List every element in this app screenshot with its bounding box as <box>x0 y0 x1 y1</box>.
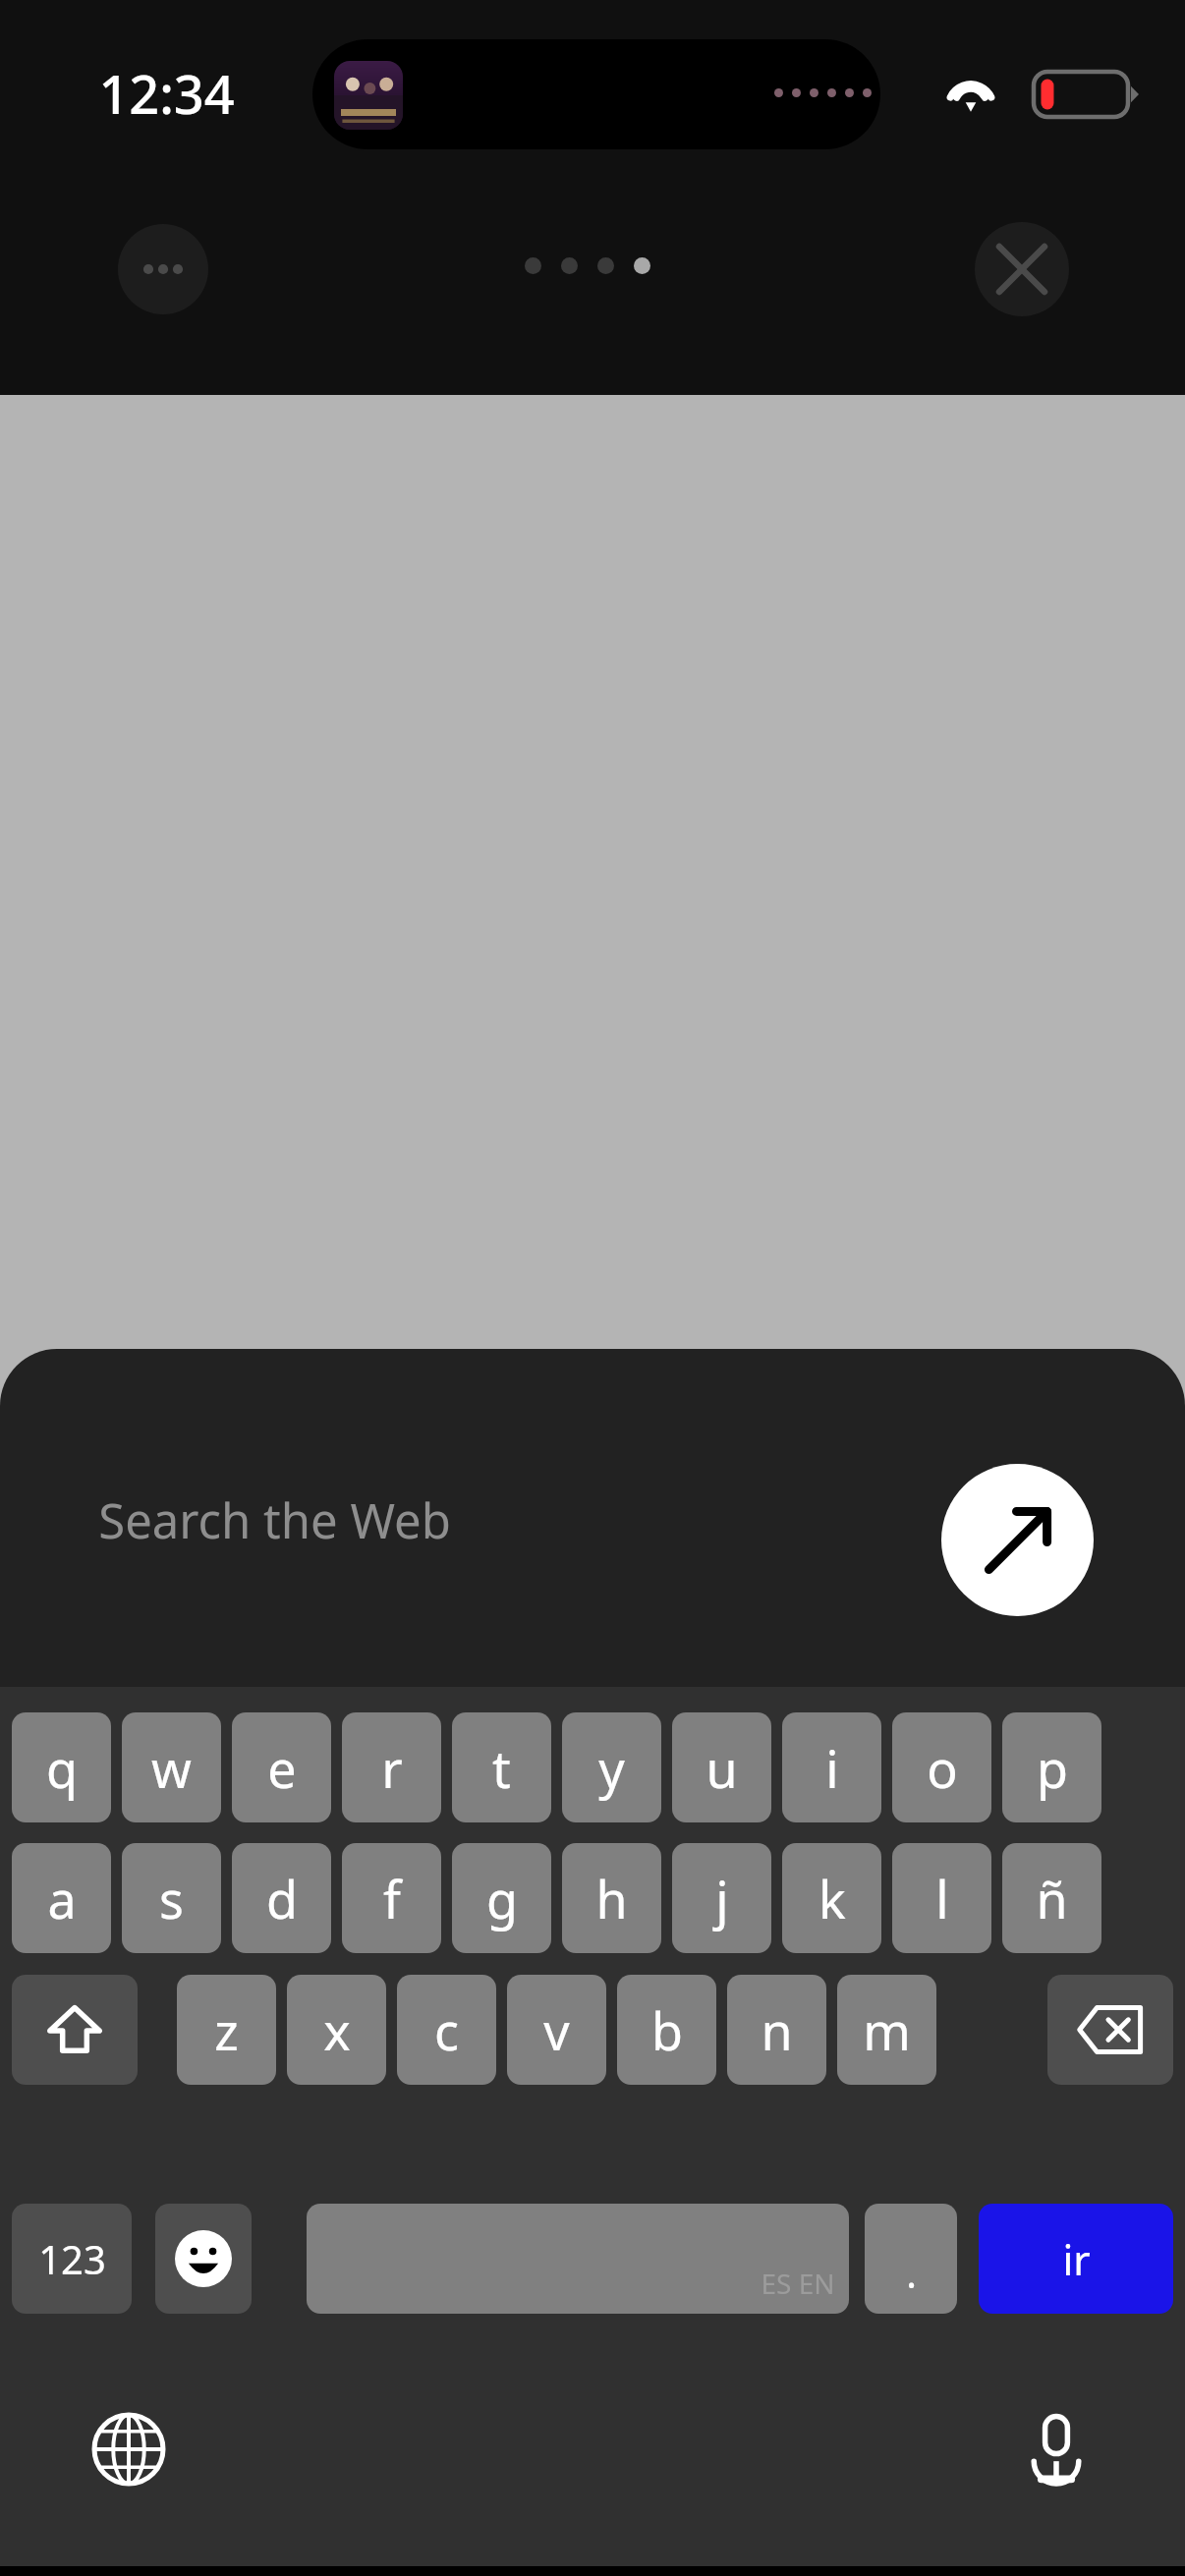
button[interactable]: Space <box>307 2204 849 2314</box>
button[interactable]: ñ <box>1002 1843 1101 1953</box>
button[interactable]: u <box>672 1712 771 1822</box>
button[interactable]: Period <box>865 2204 957 2314</box>
button[interactable]: i <box>782 1712 881 1822</box>
button[interactable]: g <box>452 1843 551 1953</box>
staticText: g <box>486 1864 518 1933</box>
button[interactable]: Go <box>979 2204 1173 2314</box>
staticText: 12:34 <box>98 57 235 130</box>
button[interactable]: Close <box>975 222 1069 316</box>
staticText: . <box>906 2246 917 2299</box>
button[interactable]: x <box>287 1975 386 2085</box>
button[interactable]: o <box>892 1712 991 1822</box>
button[interactable]: j <box>672 1843 771 1953</box>
button[interactable]: k <box>782 1843 881 1953</box>
staticText: y <box>598 1733 625 1803</box>
button[interactable]: l <box>892 1843 991 1953</box>
button[interactable]: f <box>342 1843 441 1953</box>
staticText: l <box>935 1864 949 1933</box>
staticText: k <box>818 1864 846 1933</box>
staticText: r <box>381 1733 403 1803</box>
staticText: f <box>383 1864 401 1933</box>
staticText: x <box>323 1995 351 2065</box>
button[interactable]: c <box>397 1975 496 2085</box>
staticText: b <box>651 1995 683 2065</box>
button[interactable]: e <box>232 1712 331 1822</box>
staticText: Search the Web <box>98 1487 451 1553</box>
staticText: t <box>492 1733 511 1803</box>
staticText: h <box>595 1864 628 1933</box>
staticText: v <box>543 1995 570 2065</box>
button[interactable]: a <box>12 1843 111 1953</box>
button[interactable]: Emoji <box>155 2204 252 2314</box>
staticText: ES EN <box>761 2265 835 2302</box>
button[interactable]: p <box>1002 1712 1101 1822</box>
button[interactable]: Shift <box>12 1975 138 2085</box>
staticText: q <box>46 1733 78 1803</box>
button[interactable]: d <box>232 1843 331 1953</box>
staticText: p <box>1037 1733 1068 1803</box>
button[interactable]: Change keyboard language <box>69 2389 189 2509</box>
button[interactable]: y <box>562 1712 661 1822</box>
button[interactable]: z <box>177 1975 276 2085</box>
staticText: o <box>927 1733 958 1803</box>
button[interactable]: Backspace <box>1047 1975 1173 2085</box>
button[interactable]: Numbers <box>12 2204 132 2314</box>
button[interactable]: Go <box>941 1464 1094 1616</box>
staticText: a <box>47 1864 77 1933</box>
staticText: u <box>705 1733 738 1803</box>
staticText: i <box>825 1733 839 1803</box>
button[interactable]: m <box>837 1975 936 2085</box>
staticText: 123 <box>38 2232 106 2285</box>
button[interactable]: v <box>507 1975 606 2085</box>
staticText: d <box>266 1864 298 1933</box>
button[interactable]: b <box>617 1975 716 2085</box>
staticText: m <box>863 1995 911 2065</box>
button[interactable]: s <box>122 1843 221 1953</box>
button[interactable]: r <box>342 1712 441 1822</box>
staticText: j <box>715 1864 729 1933</box>
button[interactable]: More options <box>118 224 208 314</box>
button[interactable]: h <box>562 1843 661 1953</box>
button[interactable]: w <box>122 1712 221 1822</box>
button[interactable]: n <box>727 1975 826 2085</box>
staticText: ñ <box>1036 1864 1068 1933</box>
staticText: z <box>214 1995 239 2065</box>
staticText: n <box>761 1995 793 2065</box>
staticText: ir <box>1062 2231 1091 2287</box>
staticText: s <box>159 1864 184 1933</box>
button[interactable]: Voice input <box>996 2389 1116 2509</box>
staticText: w <box>151 1733 192 1803</box>
button[interactable]: q <box>12 1712 111 1822</box>
button[interactable]: Search the Web <box>98 1475 786 1565</box>
staticText: c <box>434 1995 459 2065</box>
button[interactable]: t <box>452 1712 551 1822</box>
staticText: e <box>267 1733 297 1803</box>
